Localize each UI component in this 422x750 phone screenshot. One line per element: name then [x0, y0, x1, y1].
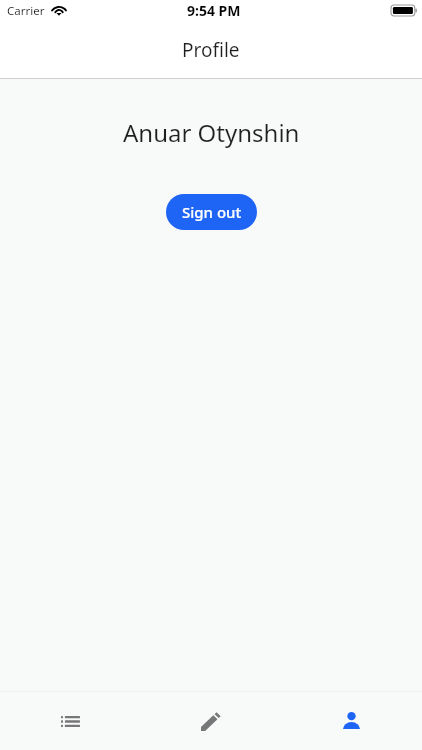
- button[interactable]: Notes list: [0, 692, 140, 750]
- button[interactable]: Sign out: [166, 194, 257, 230]
- staticText: Carrier: [7, 3, 45, 19]
- button[interactable]: Profile: [281, 692, 422, 750]
- staticText: 9:54 PM: [187, 1, 241, 20]
- staticText: Sign out: [182, 202, 242, 222]
- button[interactable]: Create note: [140, 692, 281, 750]
- staticText: Anuar Otynshin: [123, 116, 300, 149]
- staticText: Profile: [182, 37, 240, 63]
